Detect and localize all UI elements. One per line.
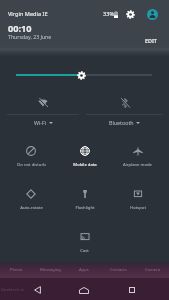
staticText: Messaging [40,267,61,273]
staticText: Cast [80,248,89,254]
staticText: Virgin Media IE [8,10,48,18]
button[interactable]: Apps [67,267,101,273]
button[interactable]: Recent apps [123,281,141,299]
staticText: Bluetooth [109,119,134,126]
staticText: Phone [10,267,23,273]
button[interactable]: Phone [0,267,33,273]
button[interactable]: Brightness [0,64,169,84]
button[interactable]: Flashlight [58,186,111,229]
staticText: 00:10 [8,22,32,35]
button[interactable]: Auto-rotate [4,186,58,229]
staticText: Mobile data [73,162,97,168]
button[interactable]: Hotspot [111,186,164,229]
staticText: Contacts [110,267,127,273]
button[interactable]: User profile [145,7,159,21]
staticText: Wi-Fi [34,119,47,126]
button[interactable]: Bluetooth [86,94,163,126]
button[interactable]: Home [75,281,93,299]
staticText: Hotspot [130,205,146,211]
staticText: Flashlight [75,205,95,211]
button[interactable]: Cast [58,229,111,272]
staticText: Geektech.ie [1,287,25,293]
button[interactable]: Wi-Fi [7,94,79,126]
button[interactable]: Airplane mode [111,143,164,186]
button[interactable]: Contacts [101,267,135,273]
staticText: Camera [145,267,160,273]
button[interactable]: Messaging [33,267,67,273]
button[interactable]: Camera [135,267,169,273]
button[interactable]: Do not disturb [4,143,58,186]
staticText: EDIT [145,37,157,44]
button[interactable]: EDIT [140,33,162,48]
staticText: Do not disturb [17,162,46,168]
staticText: Thursday, 23 June [8,33,52,40]
staticText: 33% [103,10,115,18]
staticText: Apps [79,267,89,273]
button[interactable]: Settings [124,8,137,21]
staticText: Airplane mode [123,162,152,168]
button[interactable]: Back [28,281,46,299]
button[interactable]: Mobile data [58,143,111,186]
staticText: Auto-rotate [20,205,43,211]
